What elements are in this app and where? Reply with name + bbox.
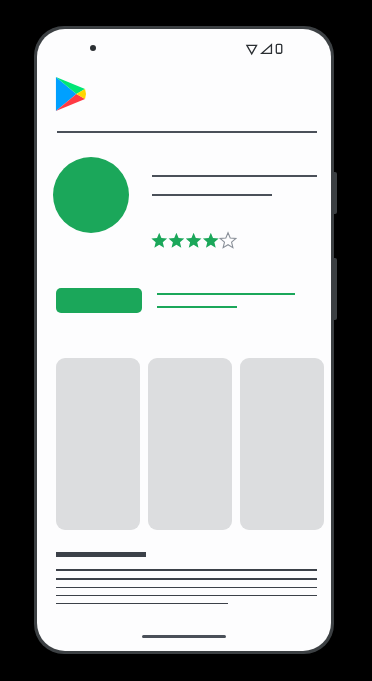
button[interactable]: Volume	[332, 172, 337, 214]
button[interactable]: Google Play	[54, 76, 86, 112]
button[interactable]: Rating 4 of 5 stars	[152, 232, 238, 250]
button[interactable]: App icon	[53, 157, 129, 233]
button[interactable]: Power	[332, 258, 337, 320]
button[interactable]: Install	[56, 288, 142, 313]
other: Status icons	[246, 42, 302, 55]
